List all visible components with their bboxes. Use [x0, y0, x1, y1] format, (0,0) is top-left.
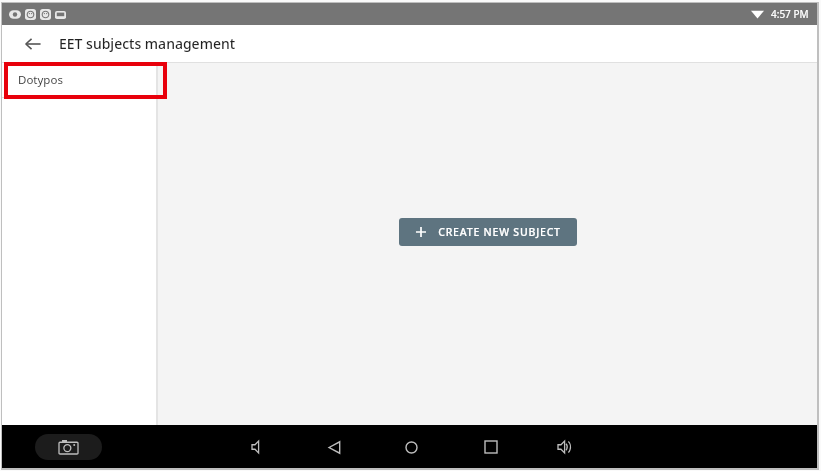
staticText: EET subjects management — [59, 34, 236, 53]
button[interactable]: Volume down — [244, 432, 274, 462]
button[interactable]: Dotypos — [2, 63, 156, 97]
button[interactable]: Back — [18, 29, 48, 59]
staticText: CREATE NEW SUBJECT — [438, 225, 561, 239]
button[interactable]: CREATE NEW SUBJECT — [399, 218, 577, 246]
staticText: 4:57 PM — [771, 7, 809, 21]
staticText: Dotypos — [18, 72, 63, 88]
button[interactable]: Volume up — [550, 432, 580, 462]
button[interactable]: Camera — [35, 434, 102, 460]
button[interactable]: Back — [319, 432, 349, 462]
button[interactable]: Recent apps — [476, 432, 506, 462]
button[interactable]: Home — [396, 432, 426, 462]
